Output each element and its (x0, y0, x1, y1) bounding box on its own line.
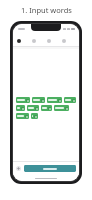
button[interactable]: Remove word (47, 97, 62, 103)
other: Remove word (58, 99, 61, 102)
button[interactable]: Remove word (32, 97, 45, 103)
button[interactable]: Remove word (64, 97, 76, 103)
other: Remove word (21, 107, 24, 110)
other: Remove word (34, 115, 37, 118)
button[interactable] (31, 39, 46, 43)
other: Remove word (35, 107, 38, 110)
other: Remove word (41, 99, 44, 102)
button[interactable]: Remove word (16, 97, 30, 103)
button[interactable] (16, 39, 31, 43)
button[interactable]: Remove word (31, 113, 38, 119)
staticText: 1. Input words (21, 5, 72, 15)
button[interactable] (46, 39, 61, 43)
other: Remove word (72, 99, 75, 102)
button[interactable] (61, 39, 76, 43)
button[interactable]: Remove word (16, 105, 25, 111)
button[interactable]: Remove word (27, 105, 39, 111)
other: Remove word (65, 107, 68, 110)
button[interactable]: Remove word (16, 113, 29, 119)
button[interactable]: Remove word (41, 105, 52, 111)
button[interactable] (24, 165, 76, 172)
other: Remove word (25, 115, 28, 118)
other: Remove word (48, 107, 51, 110)
button[interactable]: Remove word (54, 105, 69, 111)
button[interactable]: Add (16, 166, 21, 171)
other: Remove word (26, 99, 29, 102)
